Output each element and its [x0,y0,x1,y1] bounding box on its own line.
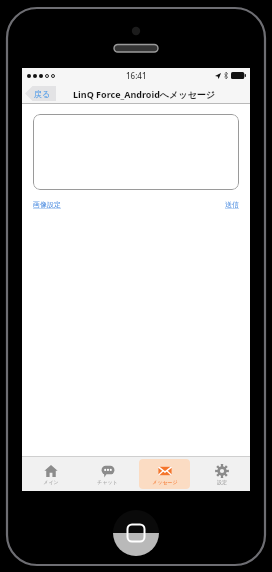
staticText: 送信 [225,200,239,209]
button[interactable]: 戻る [25,86,56,101]
staticText: チャット [97,479,118,485]
staticText: 設定 [217,479,227,485]
button[interactable]: メッセージ入力 [33,114,239,190]
button[interactable]: メイン [25,459,76,489]
staticText: メッセージ [152,479,178,485]
button[interactable]: チャット [82,459,133,489]
button[interactable]: メッセージ [139,459,190,489]
button[interactable]: 画像設定 [33,199,61,210]
staticText: メイン [43,479,59,485]
staticText: 16:41 [126,70,147,81]
button[interactable]: 送信 [225,199,239,210]
staticText: LinQ Force_Androidへメッセージ [73,88,215,100]
staticText: 戻る [34,89,51,99]
button[interactable]: 設定 [196,459,247,489]
staticText: 画像設定 [33,200,61,209]
